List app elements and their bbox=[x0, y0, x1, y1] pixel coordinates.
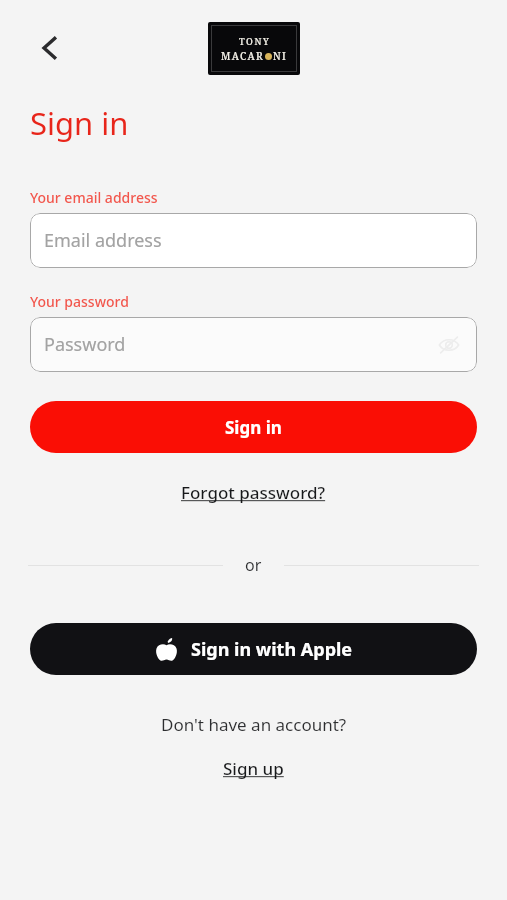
button[interactable]: Show password bbox=[435, 331, 463, 359]
button[interactable]: Email address bbox=[30, 213, 477, 268]
staticText: Sign in bbox=[225, 416, 282, 439]
staticText: or bbox=[245, 554, 262, 576]
staticText: Sign in with Apple bbox=[191, 637, 353, 662]
staticText: Your password bbox=[30, 292, 129, 311]
button[interactable]: Password bbox=[30, 317, 477, 372]
staticText: Don't have an account? bbox=[161, 713, 347, 736]
button[interactable]: Forgot password? bbox=[171, 477, 336, 508]
button[interactable]: Sign in bbox=[30, 401, 477, 453]
staticText: NI bbox=[273, 49, 288, 63]
staticText: TONY bbox=[239, 35, 271, 47]
staticText: Email address bbox=[44, 228, 162, 253]
staticText: Password bbox=[44, 332, 126, 357]
staticText: Sign in bbox=[30, 102, 129, 144]
button[interactable]: Sign in with Apple bbox=[30, 623, 477, 675]
button[interactable]: Sign up bbox=[213, 754, 294, 783]
staticText: Your email address bbox=[30, 188, 158, 207]
staticText: Forgot password? bbox=[181, 481, 326, 504]
staticText: MACAR bbox=[221, 49, 265, 63]
button[interactable]: Back bbox=[22, 20, 78, 76]
staticText: Sign up bbox=[223, 757, 284, 780]
